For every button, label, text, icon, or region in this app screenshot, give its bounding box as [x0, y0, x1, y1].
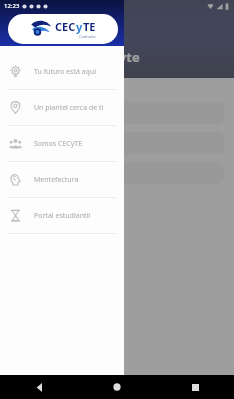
staticText: Mentefactura [34, 175, 79, 185]
staticText: CEC [55, 19, 76, 34]
button[interactable]: CEC [8, 14, 118, 44]
staticText: Cecyte [96, 48, 140, 66]
staticText: Tu futuro está aquí [34, 67, 97, 77]
button[interactable]: Inicio [0, 373, 78, 399]
staticText: Portal estudiantil [34, 211, 91, 221]
staticText: Inicio [32, 388, 46, 395]
staticText: TE [83, 19, 96, 34]
button[interactable]: Home [78, 375, 156, 399]
button[interactable]: Recent apps [156, 375, 234, 399]
staticText: Más [190, 388, 200, 395]
staticText: 12:23 [4, 2, 20, 10]
button[interactable]: Un plantel cerca de ti [0, 90, 124, 125]
button[interactable] [10, 162, 224, 184]
button[interactable] [10, 102, 224, 124]
button[interactable]: Mentefactura [0, 162, 124, 197]
staticText: Coahuila [79, 34, 96, 39]
button[interactable]: Somos CECyTE [78, 373, 156, 399]
button[interactable]: Back [0, 375, 78, 399]
button[interactable]: Tu futuro está aquí [0, 54, 124, 89]
button[interactable] [10, 132, 224, 154]
staticText: y [76, 19, 83, 34]
button[interactable]: Portal estudiantil [0, 198, 124, 233]
staticText: Somos CECyTE [100, 388, 135, 395]
staticText: Un plantel cerca de ti [34, 103, 104, 113]
button[interactable]: Somos CECyTE [0, 126, 124, 161]
staticText: Somos CECyTE [34, 139, 83, 149]
button[interactable]: Más [156, 373, 234, 399]
